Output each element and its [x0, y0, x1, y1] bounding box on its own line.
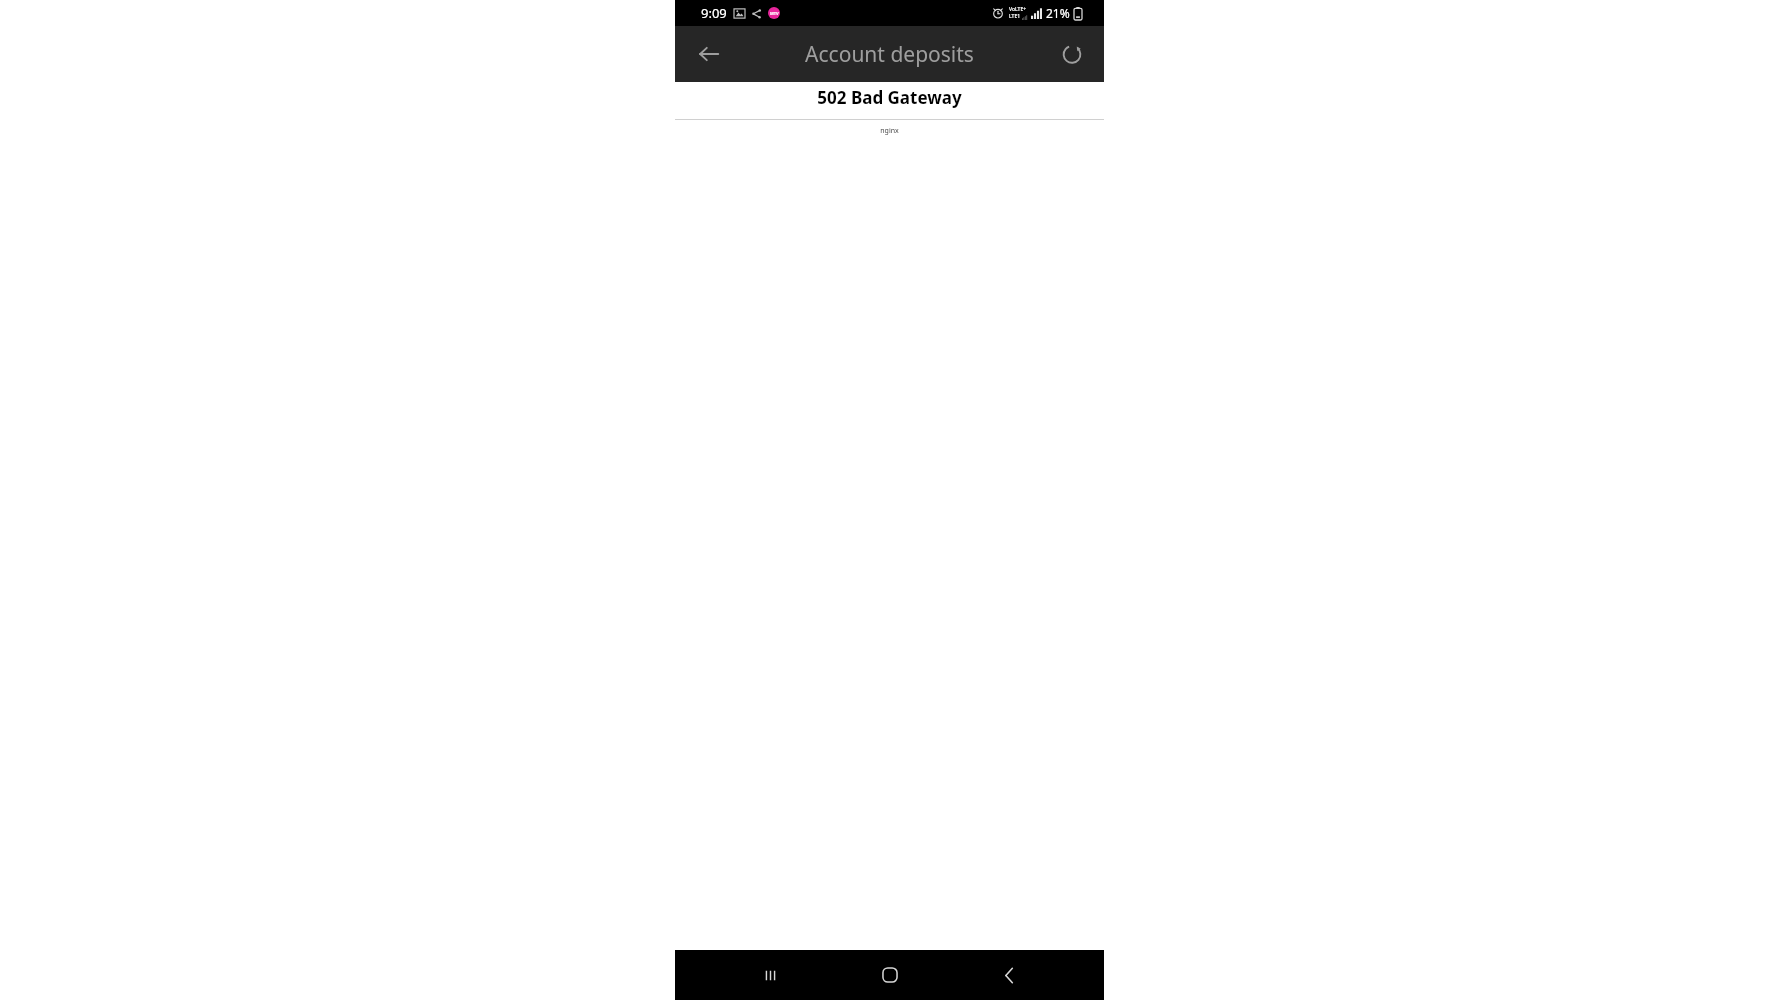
staticText: nginx — [675, 126, 1104, 136]
staticText: 502 Bad Gateway — [675, 86, 1104, 109]
button[interactable]: Navigate up — [685, 30, 733, 78]
button[interactable]: Home — [866, 951, 914, 999]
button[interactable]: Refresh — [1048, 30, 1096, 78]
staticText: VoLTE+ — [1009, 6, 1027, 13]
button[interactable]: Recent apps — [746, 951, 794, 999]
staticText: LTE1 — [1009, 13, 1021, 20]
staticText: MTV — [770, 11, 779, 16]
button[interactable]: Back — [985, 951, 1033, 999]
staticText: Account deposits — [805, 40, 974, 69]
staticText: 9:09 — [701, 4, 727, 22]
staticText: 21% — [1046, 5, 1070, 21]
